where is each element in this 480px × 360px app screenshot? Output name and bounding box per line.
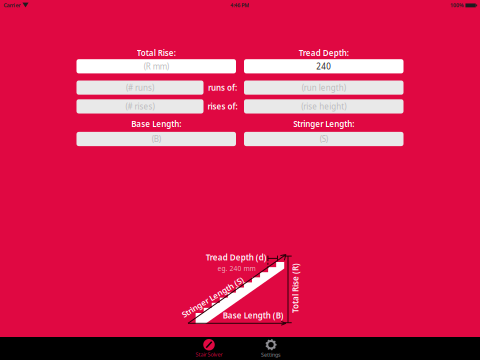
button[interactable]: (R mm) bbox=[76, 59, 236, 73]
button[interactable]: Settings bbox=[240, 337, 302, 360]
staticText: (run length) bbox=[302, 82, 346, 93]
button[interactable]: (rise height) bbox=[244, 99, 403, 113]
staticText: Stringer Length: bbox=[293, 118, 354, 129]
staticText: Base Length: bbox=[131, 118, 181, 129]
staticText: Settings bbox=[261, 351, 281, 358]
staticText: Stair Solver bbox=[195, 351, 222, 358]
button[interactable]: (S) bbox=[244, 132, 403, 146]
button[interactable]: (B) bbox=[76, 132, 236, 146]
staticText: (S) bbox=[320, 134, 328, 144]
staticText: (B) bbox=[152, 134, 161, 144]
button[interactable]: 240 bbox=[244, 59, 403, 73]
staticText: Total Rise: bbox=[137, 48, 176, 58]
staticText: Base Length (B) bbox=[223, 310, 284, 321]
button[interactable]: (# runs) bbox=[76, 80, 203, 95]
staticText: rises of: bbox=[207, 101, 237, 112]
staticText: Stringer Length (S) bbox=[177, 292, 248, 302]
button[interactable]: (run length) bbox=[244, 80, 403, 95]
staticText: Total Rise (R) bbox=[270, 283, 320, 293]
staticText: Carrier bbox=[3, 2, 20, 9]
staticText: Tread Depth (d) bbox=[206, 252, 267, 263]
staticText: 240 bbox=[316, 61, 331, 72]
button[interactable]: Stair Solver bbox=[178, 337, 240, 360]
staticText: Tread Depth: bbox=[299, 48, 349, 58]
staticText: (rise height) bbox=[301, 101, 346, 112]
staticText: 100% bbox=[450, 2, 464, 9]
staticText: runs of: bbox=[208, 82, 237, 93]
staticText: (# runs) bbox=[126, 82, 154, 93]
staticText: 4:46 PM bbox=[230, 2, 249, 9]
staticText: (# rises) bbox=[125, 101, 154, 112]
staticText: (R mm) bbox=[144, 61, 169, 72]
staticText: eg. 240 mm bbox=[217, 264, 255, 273]
button[interactable]: (# rises) bbox=[76, 99, 203, 113]
